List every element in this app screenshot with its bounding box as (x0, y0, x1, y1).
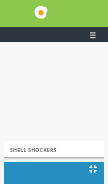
button[interactable]: Exit fullscreen (87, 163, 99, 175)
button[interactable]: Menu (87, 30, 99, 39)
staticText: SHELL SHOCKERS (10, 146, 57, 153)
button[interactable]: SHELL SHOCKERS (4, 141, 104, 157)
